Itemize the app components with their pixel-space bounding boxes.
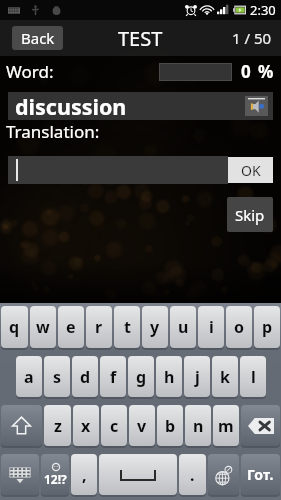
button[interactable]: Space [99, 454, 177, 495]
button[interactable]: s [44, 356, 70, 397]
staticText: Back [21, 28, 55, 48]
button[interactable]: Shift [1, 405, 42, 446]
staticText: 2:30 [250, 1, 276, 19]
staticText: k [220, 366, 230, 388]
button[interactable]: n [185, 405, 211, 446]
staticText: Skip [235, 205, 265, 225]
other: Shift [1, 405, 42, 446]
button[interactable]: f [100, 356, 126, 397]
staticText: x [81, 415, 91, 437]
other: Change language [208, 454, 239, 495]
button[interactable]: x [73, 405, 99, 446]
staticText: discussion [15, 92, 127, 120]
staticText: j [195, 366, 200, 388]
staticText: o [234, 316, 245, 338]
staticText: d [80, 366, 91, 388]
staticText: Word: [6, 60, 54, 83]
button[interactable]: i [198, 306, 224, 348]
button[interactable]: p [254, 306, 280, 348]
button[interactable]: u [170, 306, 196, 348]
button[interactable]: e [58, 306, 84, 348]
button[interactable]: Back [12, 26, 63, 50]
staticText: OK [241, 161, 261, 180]
staticText: , [82, 464, 87, 486]
button[interactable]: OK [228, 157, 273, 183]
other: Backspace [241, 405, 280, 446]
other: Space [99, 454, 177, 495]
staticText: e [66, 316, 76, 338]
button[interactable]: d [72, 356, 98, 397]
button[interactable]: Change language [208, 454, 239, 495]
button[interactable]: r [86, 306, 112, 348]
button[interactable] [8, 156, 228, 184]
button[interactable]: m [213, 405, 239, 446]
button[interactable]: b [157, 405, 183, 446]
button[interactable]: Hide keyboard [1, 454, 39, 495]
button[interactable]: l [240, 356, 266, 397]
staticText: a [24, 366, 34, 388]
staticText: t [124, 316, 131, 338]
staticText: . [190, 464, 195, 486]
staticText: 0 [241, 60, 251, 83]
staticText: r [95, 316, 103, 338]
button[interactable]: , [71, 454, 97, 495]
button[interactable]: g [128, 356, 154, 397]
staticText: f [110, 366, 117, 388]
button[interactable]: Гот. [241, 454, 280, 495]
staticText: l [251, 366, 256, 388]
button[interactable]: Pronounce [245, 96, 268, 116]
button[interactable]: k [212, 356, 238, 397]
button[interactable]: v [129, 405, 155, 446]
button[interactable]: w [30, 306, 56, 348]
staticText: q [9, 316, 20, 338]
button[interactable]: c [101, 405, 127, 446]
staticText: u [178, 316, 189, 338]
button[interactable]: y [142, 306, 168, 348]
staticText: % [258, 60, 274, 83]
staticText: Гот. [247, 465, 274, 484]
button[interactable]: j [184, 356, 210, 397]
staticText: s [53, 366, 62, 388]
staticText: 1 / 50 [232, 28, 272, 48]
staticText: 12!? [44, 471, 67, 487]
staticText: b [165, 415, 176, 437]
button[interactable]: . [179, 454, 206, 495]
staticText: Translation: [6, 120, 100, 143]
staticText: h [164, 366, 175, 388]
staticText: c [110, 415, 119, 437]
staticText: i [209, 316, 214, 338]
button[interactable]: 12!? [41, 454, 69, 495]
staticText: w [36, 316, 50, 338]
staticText: p [262, 316, 273, 338]
button[interactable]: q [1, 306, 28, 348]
staticText: n [193, 415, 204, 437]
staticText: y [150, 316, 160, 338]
other: Hide keyboard [1, 454, 39, 495]
button[interactable]: z [44, 405, 71, 446]
staticText: TEST [118, 25, 163, 52]
button[interactable]: a [16, 356, 42, 397]
button[interactable]: Backspace [241, 405, 280, 446]
staticText: z [54, 415, 62, 437]
button[interactable]: Skip [227, 197, 273, 232]
staticText: m [218, 415, 234, 437]
staticText: v [137, 415, 147, 437]
button[interactable]: t [114, 306, 140, 348]
button[interactable]: o [226, 306, 252, 348]
button[interactable]: h [156, 356, 182, 397]
staticText: g [136, 366, 147, 388]
